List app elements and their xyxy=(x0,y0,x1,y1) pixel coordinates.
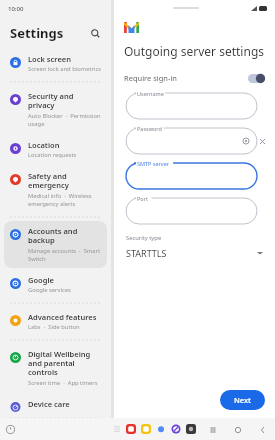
button[interactable]: Recents xyxy=(208,425,217,434)
button[interactable]: Advanced features xyxy=(4,307,107,336)
button[interactable]: Security and privacy xyxy=(4,86,107,133)
button[interactable]: App chat xyxy=(126,424,136,434)
staticText: Device care xyxy=(28,399,70,409)
staticText: Google services xyxy=(28,286,71,294)
button[interactable]: Require sign-in xyxy=(114,71,275,85)
staticText: Port xyxy=(137,195,148,202)
button[interactable]: Accounts and backup xyxy=(4,221,107,268)
button[interactable]: Location xyxy=(4,135,107,164)
staticText: Username xyxy=(137,90,164,97)
staticText: Labs · Side button xyxy=(28,323,80,331)
staticText: Accounts and backup xyxy=(28,226,101,246)
staticText: Location xyxy=(28,140,60,150)
staticText: Medical info · Wireless emergency alerts xyxy=(28,192,101,208)
button[interactable]: Back xyxy=(258,425,267,434)
button[interactable] xyxy=(126,93,257,119)
staticText: Lock screen xyxy=(28,54,71,64)
staticText: Password xyxy=(137,125,162,132)
button[interactable]: Lock screen xyxy=(4,49,107,78)
staticText: Security type xyxy=(126,234,162,242)
button[interactable]: Home xyxy=(233,425,242,434)
button[interactable]: All apps xyxy=(113,425,121,433)
button[interactable]: Show password xyxy=(242,137,250,145)
staticText: Digital Wellbeing and parental controls xyxy=(28,349,101,378)
button[interactable]: App cam xyxy=(186,424,196,434)
staticText: Location requests xyxy=(28,151,77,159)
button[interactable] xyxy=(126,128,257,154)
button[interactable] xyxy=(126,198,257,224)
staticText: Screen time · App timers xyxy=(28,379,98,387)
staticText: Screen lock and biometrics xyxy=(28,65,101,73)
staticText: Auto Blocker · Permission usage xyxy=(28,112,101,128)
staticText: Google xyxy=(28,275,54,285)
button[interactable]: App drop xyxy=(156,424,166,434)
staticText: Security and privacy xyxy=(28,91,101,111)
staticText: Outgoing server settings xyxy=(124,43,265,59)
button[interactable]: Device care xyxy=(4,394,107,417)
button[interactable]: Search settings xyxy=(87,25,103,41)
button[interactable] xyxy=(126,163,257,189)
staticText: SMTP server xyxy=(137,160,169,167)
staticText: Safety and emergency xyxy=(28,171,101,191)
button[interactable]: Clear xyxy=(257,136,267,146)
staticText: Advanced features xyxy=(28,312,97,322)
button[interactable]: Digital Wellbeing and parental controls xyxy=(4,344,107,392)
button[interactable]: Safety and emergency xyxy=(4,166,107,213)
staticText: Settings xyxy=(10,24,64,42)
staticText: Require sign-in xyxy=(124,73,177,83)
staticText: 10:00 xyxy=(8,5,24,13)
staticText: Manage accounts · Smart Switch xyxy=(28,247,101,263)
button[interactable]: Google xyxy=(4,270,107,299)
button[interactable]: STARTTLS xyxy=(114,246,275,260)
staticText: Next xyxy=(234,395,251,405)
staticText: STARTTLS xyxy=(126,247,167,259)
button[interactable]: Recent xyxy=(6,425,15,434)
button[interactable]: App circle xyxy=(171,424,181,434)
button[interactable]: App square xyxy=(141,424,151,434)
button[interactable]: Require sign-in toggle xyxy=(248,74,265,83)
button[interactable]: Next xyxy=(220,390,265,410)
